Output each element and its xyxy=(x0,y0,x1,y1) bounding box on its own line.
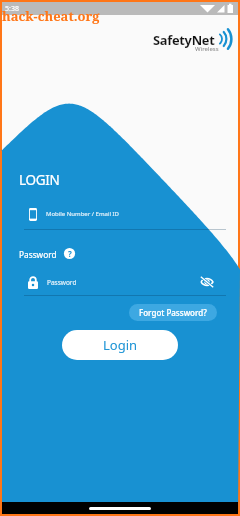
button[interactable]: Show password xyxy=(200,275,214,289)
staticText: hack-cheat.org xyxy=(2,7,100,25)
staticText: Wireless xyxy=(195,45,219,53)
button[interactable]: Forgot Password? xyxy=(129,304,217,321)
button[interactable]: Password help xyxy=(63,247,76,260)
staticText: SafetyNet xyxy=(153,31,215,48)
staticText: ? xyxy=(68,248,72,259)
staticText: Forgot Password? xyxy=(139,307,207,318)
button[interactable]: Login xyxy=(62,330,178,360)
staticText: 5:38 xyxy=(5,4,19,14)
staticText: LOGIN xyxy=(19,171,60,189)
staticText: Login xyxy=(103,336,138,354)
staticText: Password xyxy=(19,249,57,260)
staticText: Password xyxy=(47,278,77,287)
staticText: Mobile Number / Email ID xyxy=(46,210,119,218)
